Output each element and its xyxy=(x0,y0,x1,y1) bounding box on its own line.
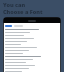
button[interactable] xyxy=(4,64,60,66)
button[interactable] xyxy=(4,52,60,54)
button[interactable] xyxy=(4,34,60,36)
other: Back xyxy=(5,25,12,27)
staticText: You can xyxy=(3,1,26,8)
button[interactable] xyxy=(4,31,60,33)
staticText: Choose a Font xyxy=(3,8,43,15)
button[interactable] xyxy=(4,70,60,72)
button[interactable]: Back xyxy=(4,23,60,28)
button[interactable] xyxy=(4,55,60,57)
button[interactable] xyxy=(4,37,60,39)
button[interactable] xyxy=(4,46,60,48)
button[interactable] xyxy=(4,43,60,45)
button[interactable] xyxy=(4,28,60,30)
button[interactable] xyxy=(4,49,60,51)
button[interactable] xyxy=(4,58,60,60)
button[interactable] xyxy=(4,61,60,63)
button[interactable]: Search xyxy=(14,25,23,27)
button[interactable] xyxy=(4,67,60,69)
button[interactable] xyxy=(4,40,60,42)
